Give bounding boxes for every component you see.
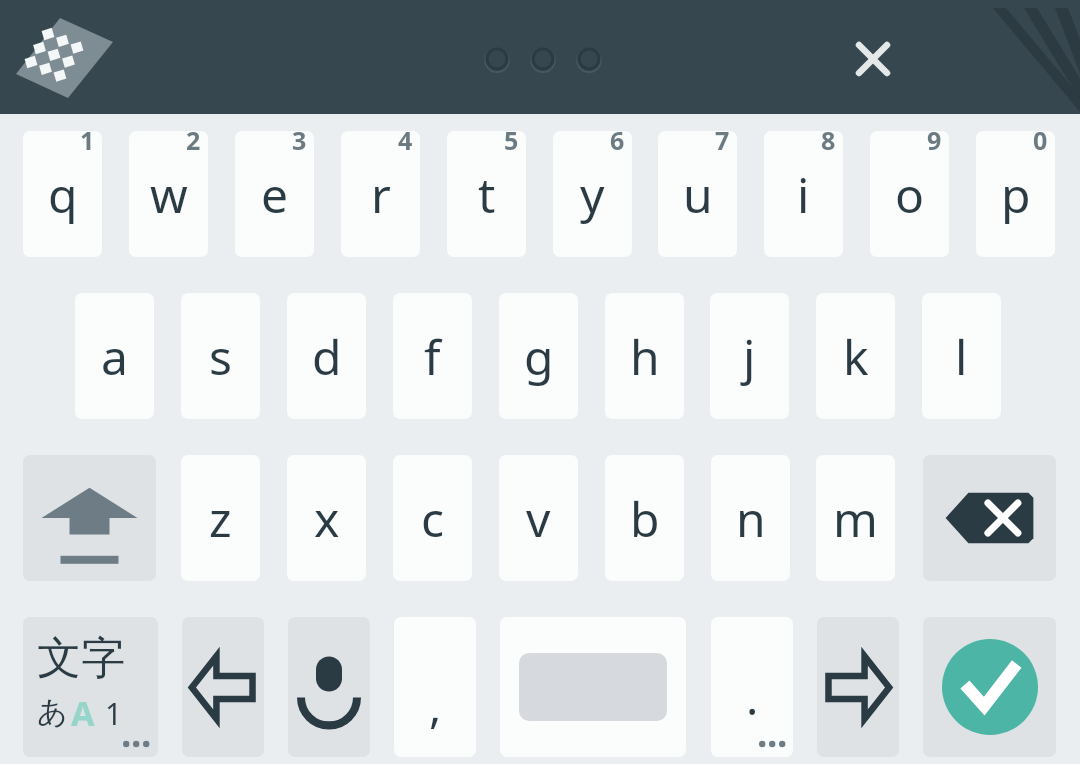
- button[interactable]: Move cursor left: [182, 617, 264, 757]
- button[interactable]: Keyboard app: [14, 18, 114, 98]
- staticText: a: [101, 324, 128, 389]
- staticText: 1: [80, 123, 95, 157]
- button[interactable]: x: [287, 455, 366, 581]
- staticText: 0: [1033, 123, 1048, 157]
- button[interactable]: k: [816, 293, 895, 419]
- staticText: 4: [398, 123, 413, 157]
- staticText: y: [580, 162, 605, 227]
- staticText: s: [209, 324, 232, 389]
- button[interactable]: v: [499, 455, 578, 581]
- staticText: q: [48, 162, 78, 227]
- staticText: .: [746, 666, 759, 729]
- staticText: 8: [821, 123, 836, 157]
- staticText: f: [424, 324, 441, 389]
- staticText: h: [630, 324, 660, 389]
- button[interactable]: p: [976, 131, 1055, 257]
- button[interactable]: c: [393, 455, 472, 581]
- staticText: i: [797, 162, 810, 227]
- staticText: x: [314, 486, 340, 551]
- button[interactable]: y: [553, 131, 632, 257]
- button[interactable]: l: [922, 293, 1001, 419]
- staticText: j: [743, 324, 756, 389]
- staticText: 6: [610, 123, 625, 157]
- button[interactable]: z: [181, 455, 260, 581]
- staticText: p: [1001, 162, 1031, 227]
- staticText: 5: [504, 123, 519, 157]
- staticText: w: [150, 162, 188, 227]
- button[interactable]: u: [658, 131, 737, 257]
- staticText: あ: [37, 693, 68, 731]
- button[interactable]: Switch input mode: [23, 617, 158, 757]
- staticText: b: [630, 486, 660, 551]
- staticText: u: [683, 162, 713, 227]
- button[interactable]: t: [447, 131, 526, 257]
- button[interactable]: s: [181, 293, 260, 419]
- staticText: o: [895, 162, 925, 227]
- button[interactable]: g: [499, 293, 578, 419]
- button[interactable]: Enter: [923, 617, 1056, 757]
- button[interactable]: i: [764, 131, 843, 257]
- button[interactable]: h: [605, 293, 684, 419]
- button[interactable]: r: [341, 131, 420, 257]
- button[interactable]: m: [816, 455, 895, 581]
- button[interactable]: e: [235, 131, 314, 257]
- button[interactable]: a: [75, 293, 154, 419]
- staticText: 文字: [37, 631, 125, 686]
- button[interactable]: b: [605, 455, 684, 581]
- button[interactable]: Period: [711, 617, 793, 757]
- button[interactable]: Voice input: [288, 617, 370, 757]
- button[interactable]: Comma: [394, 617, 476, 757]
- button[interactable]: d: [287, 293, 366, 419]
- staticText: g: [524, 324, 554, 389]
- staticText: l: [955, 324, 968, 389]
- staticText: d: [312, 324, 342, 389]
- staticText: m: [833, 486, 878, 551]
- staticText: z: [209, 486, 232, 551]
- button[interactable]: f: [393, 293, 472, 419]
- staticText: 9: [927, 123, 942, 157]
- staticText: t: [478, 162, 496, 227]
- staticText: 1: [105, 693, 123, 734]
- staticText: r: [371, 162, 391, 227]
- staticText: 7: [715, 123, 730, 157]
- staticText: 3: [292, 123, 307, 157]
- staticText: ,: [429, 674, 442, 737]
- button[interactable]: Move cursor right: [817, 617, 899, 757]
- staticText: e: [261, 162, 289, 227]
- button[interactable]: q: [23, 131, 102, 257]
- staticText: k: [843, 324, 869, 389]
- staticText: A: [71, 690, 95, 736]
- button[interactable]: Backspace: [923, 455, 1056, 581]
- staticText: v: [526, 486, 551, 551]
- button[interactable]: Space: [500, 617, 686, 757]
- button[interactable]: Close keyboard: [845, 31, 901, 87]
- button[interactable]: o: [870, 131, 949, 257]
- button[interactable]: n: [711, 455, 790, 581]
- button[interactable]: j: [710, 293, 789, 419]
- staticText: 2: [186, 123, 201, 157]
- staticText: c: [421, 486, 445, 551]
- button[interactable]: Shift: [23, 455, 156, 581]
- staticText: n: [736, 486, 766, 551]
- button[interactable]: w: [129, 131, 208, 257]
